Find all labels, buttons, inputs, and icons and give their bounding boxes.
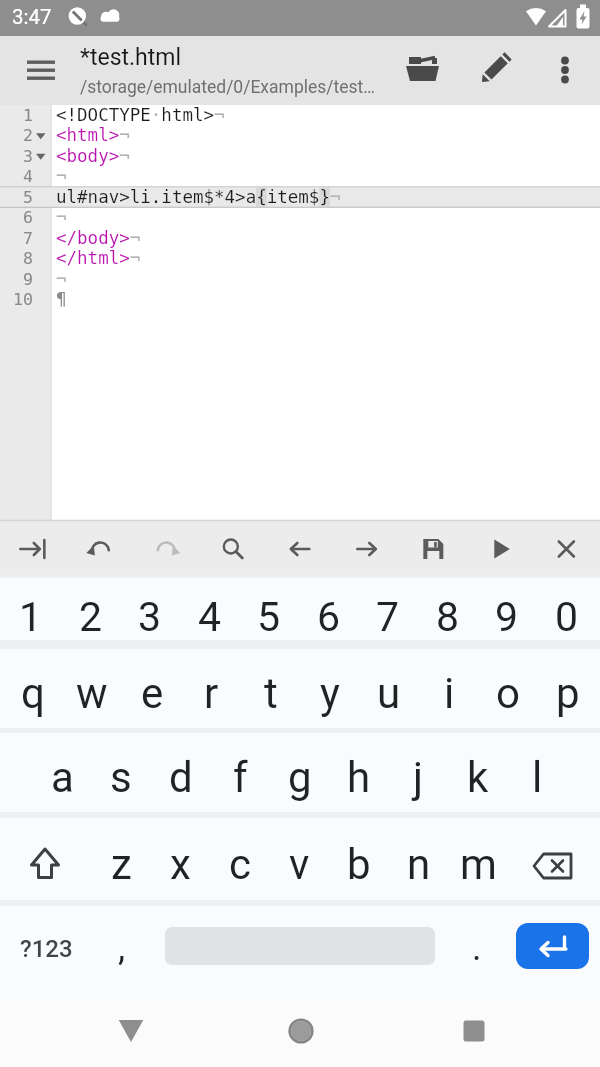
staticText: v: [289, 840, 310, 889]
staticText: 1: [23, 106, 33, 125]
button[interactable]: [18, 50, 64, 90]
button[interactable]: 8: [419, 586, 477, 648]
staticText: /storage/emulated/0/Examples/test…: [80, 77, 375, 98]
button[interactable]: o: [479, 656, 537, 730]
staticText: 1: [19, 593, 43, 641]
button[interactable]: t: [242, 656, 300, 730]
button[interactable]: m: [449, 827, 507, 901]
button[interactable]: g: [271, 740, 329, 814]
button[interactable]: k: [449, 740, 507, 814]
button[interactable]: d: [152, 740, 210, 814]
button[interactable]: s: [92, 740, 150, 814]
button[interactable]: 3: [121, 586, 179, 648]
staticText: 7: [376, 593, 400, 641]
button[interactable]: y: [301, 656, 359, 730]
button[interactable]: 1: [2, 586, 60, 648]
staticText: i: [444, 669, 455, 718]
button[interactable]: [470, 46, 518, 94]
button[interactable]: u: [360, 656, 418, 730]
button[interactable]: p: [539, 656, 597, 730]
button[interactable]: x: [151, 827, 209, 901]
button[interactable]: q: [4, 656, 62, 730]
staticText: 3:47: [12, 5, 52, 29]
button[interactable]: h: [330, 740, 388, 814]
button[interactable]: a: [33, 740, 91, 814]
staticText: 6: [23, 208, 33, 227]
staticText: w: [76, 669, 108, 718]
button[interactable]: 9: [478, 586, 536, 648]
button[interactable]: 0: [538, 586, 596, 648]
button[interactable]: 4: [181, 586, 239, 648]
staticText: 3: [138, 593, 162, 641]
staticText: <body>¬: [56, 146, 130, 166]
button[interactable]: [399, 46, 447, 94]
button[interactable]: [400, 521, 467, 575]
staticText: 0: [555, 593, 579, 641]
button[interactable]: j: [389, 740, 447, 814]
button[interactable]: 5: [240, 586, 298, 648]
button[interactable]: 7: [359, 586, 417, 648]
staticText: a: [51, 753, 74, 802]
button[interactable]: [333, 521, 400, 575]
staticText: k: [467, 753, 489, 802]
button[interactable]: i: [420, 656, 478, 730]
button[interactable]: [533, 521, 600, 575]
button[interactable]: [541, 46, 589, 94]
button[interactable]: l: [508, 740, 566, 814]
button[interactable]: [133, 521, 200, 575]
button[interactable]: [0, 521, 67, 575]
staticText: <html>¬: [56, 125, 130, 145]
staticText: l: [532, 753, 543, 802]
staticText: d: [169, 753, 193, 802]
button[interactable]: [467, 521, 534, 575]
staticText: ul#nav>li.item$*4>a{item$}¬: [56, 187, 341, 207]
button[interactable]: [200, 521, 267, 575]
button[interactable]: .: [451, 911, 503, 985]
staticText: h: [347, 753, 371, 802]
button[interactable]: [516, 923, 589, 969]
button[interactable]: [107, 1007, 155, 1055]
button[interactable]: [67, 521, 134, 575]
button[interactable]: [277, 1007, 325, 1055]
staticText: b: [347, 840, 371, 889]
staticText: 3: [23, 147, 33, 166]
button[interactable]: [267, 521, 334, 575]
button[interactable]: b: [330, 827, 388, 901]
button[interactable]: [513, 829, 593, 903]
staticText: 4: [23, 167, 33, 186]
staticText: *test.html: [80, 44, 182, 71]
button[interactable]: n: [390, 827, 448, 901]
staticText: o: [496, 669, 520, 718]
button[interactable]: [5, 827, 85, 901]
button[interactable]: ,: [96, 911, 148, 985]
staticText: s: [110, 753, 132, 802]
button[interactable]: ?123: [2, 912, 90, 986]
staticText: 2: [79, 593, 103, 641]
button[interactable]: 6: [300, 586, 358, 648]
staticText: .: [472, 927, 482, 969]
button[interactable]: [450, 1007, 498, 1055]
button[interactable]: e: [123, 656, 181, 730]
staticText: 10: [13, 290, 33, 309]
staticText: 5: [23, 188, 33, 207]
button[interactable]: c: [211, 827, 269, 901]
button[interactable]: r: [182, 656, 240, 730]
button[interactable]: z: [92, 827, 150, 901]
staticText: j: [413, 753, 424, 802]
staticText: f: [233, 753, 248, 802]
staticText: 8: [23, 249, 33, 268]
staticText: t: [264, 669, 278, 718]
staticText: y: [320, 669, 340, 718]
button[interactable]: w: [63, 656, 121, 730]
staticText: p: [556, 669, 580, 718]
staticText: n: [407, 840, 431, 889]
button[interactable]: v: [270, 827, 328, 901]
staticText: x: [170, 840, 191, 889]
staticText: c: [229, 840, 251, 889]
button[interactable]: 2: [62, 586, 120, 648]
button[interactable]: f: [211, 740, 269, 814]
staticText: 6: [317, 593, 341, 641]
staticText: ,: [118, 927, 126, 969]
staticText: </html>¬: [56, 248, 141, 268]
